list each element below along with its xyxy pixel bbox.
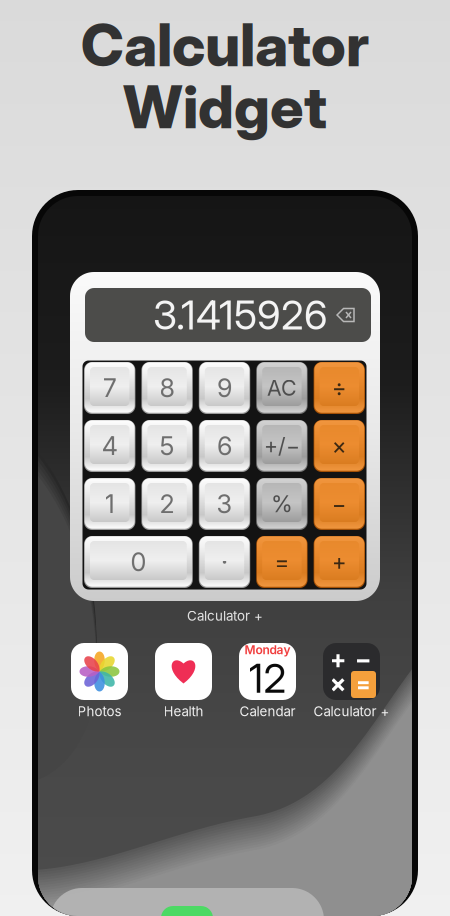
staticText: 0 — [130, 547, 146, 577]
button[interactable]: Health — [155, 643, 212, 719]
staticText: 3 — [216, 489, 232, 519]
staticText: × — [332, 432, 347, 460]
staticText: 8 — [160, 373, 175, 403]
staticText: − — [332, 490, 347, 518]
button[interactable]: + — [314, 536, 365, 588]
staticText: 6 — [217, 431, 232, 461]
staticText: 4 — [102, 431, 118, 461]
staticText: − — [354, 644, 371, 674]
staticText: + — [332, 548, 347, 576]
staticText: 5 — [160, 431, 175, 461]
staticText: 1 — [105, 489, 115, 519]
staticText: Calculator — [81, 9, 369, 80]
button[interactable]: Monday — [239, 643, 296, 719]
staticText: Health — [163, 703, 203, 719]
button[interactable]: 0 — [84, 536, 193, 588]
staticText: = — [355, 670, 370, 698]
staticText: + — [329, 644, 346, 674]
button[interactable]: 6 — [199, 420, 250, 472]
button[interactable]: · — [199, 536, 250, 588]
staticText: Calculator + — [187, 608, 263, 624]
staticText: 2 — [160, 489, 175, 519]
button[interactable]: ÷ — [314, 362, 365, 414]
staticText: Photos — [77, 703, 121, 719]
staticText: Monday — [244, 642, 290, 657]
button[interactable]: − — [314, 478, 365, 530]
staticText: · — [221, 546, 228, 578]
button[interactable]: AC — [256, 362, 308, 414]
button[interactable]: 3 — [199, 478, 250, 530]
button[interactable]: % — [256, 478, 308, 530]
button[interactable]: + — [323, 643, 380, 719]
button[interactable]: 1 — [84, 478, 135, 530]
button[interactable]: 5 — [141, 420, 193, 472]
button[interactable]: 8 — [141, 362, 193, 414]
staticText: ÷ — [332, 374, 347, 402]
staticText: % — [271, 490, 293, 518]
staticText: Widget — [123, 71, 327, 142]
button[interactable]: = — [256, 536, 308, 588]
button[interactable]: Photos — [71, 643, 128, 719]
button[interactable]: × — [314, 420, 365, 472]
staticText: 9 — [217, 373, 232, 403]
staticText: = — [274, 548, 289, 576]
staticText: 12 — [248, 654, 286, 702]
button[interactable]: 7 — [84, 362, 135, 414]
staticText: Calculator + — [313, 703, 389, 719]
staticText: Calendar — [239, 703, 295, 719]
button[interactable]: 2 — [141, 478, 193, 530]
staticText: AC — [267, 375, 297, 401]
button[interactable]: 9 — [199, 362, 250, 414]
button[interactable]: +/− — [256, 420, 308, 472]
button[interactable]: 4 — [84, 420, 135, 472]
staticText: 7 — [103, 373, 117, 403]
staticText: 3.1415926 — [153, 291, 328, 339]
staticText: × — [329, 668, 346, 698]
staticText: +/− — [264, 433, 300, 459]
